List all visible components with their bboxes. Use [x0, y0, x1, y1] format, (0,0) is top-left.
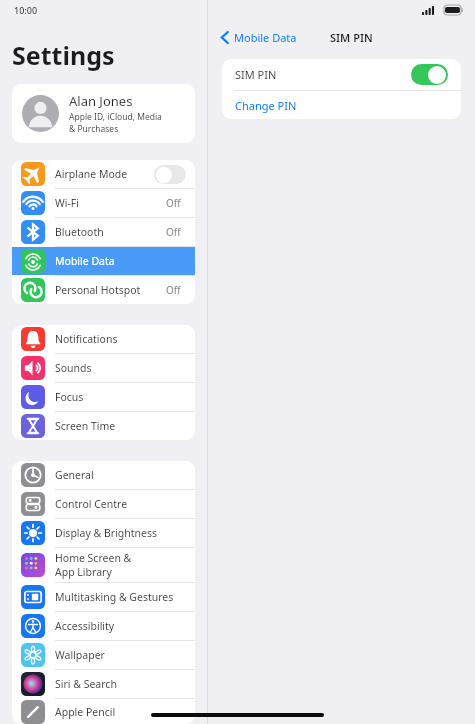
staticText: Personal Hotspot: [55, 283, 141, 297]
button[interactable]: Personal Hotspot: [12, 276, 195, 304]
button[interactable]: Back: [219, 25, 299, 50]
button[interactable]: Control Centre: [12, 490, 195, 518]
button[interactable]: General: [12, 461, 195, 489]
staticText: Settings: [12, 38, 115, 72]
staticText: General: [55, 468, 94, 482]
button[interactable]: SIM PIN: [222, 59, 461, 90]
button[interactable]: Siri & Search: [12, 670, 195, 698]
staticText: App Library: [55, 565, 112, 579]
staticText: & Purchases: [69, 123, 119, 135]
button[interactable]: Screen Time: [12, 412, 195, 440]
button[interactable]: Home Screen &: [12, 548, 195, 582]
staticText: Off: [166, 283, 181, 297]
button[interactable]: Wallpaper: [12, 641, 195, 669]
staticText: Focus: [55, 390, 84, 404]
staticText: Notifications: [55, 332, 118, 346]
staticText: Apple Pencil: [55, 705, 116, 719]
staticText: Bluetooth: [55, 225, 104, 239]
button[interactable]: Multitasking & Gestures: [12, 583, 195, 611]
button[interactable]: Accessibility: [12, 612, 195, 640]
staticText: Display & Brightness: [55, 526, 158, 540]
staticText: SIM PIN: [235, 67, 411, 82]
button[interactable]: Change PIN: [222, 91, 461, 119]
button[interactable]: Airplane Mode: [12, 160, 195, 188]
staticText: Screen Time: [55, 419, 116, 433]
button[interactable]: Wi-Fi: [12, 189, 195, 217]
button[interactable]: Notifications: [12, 325, 195, 353]
staticText: SIM PIN: [330, 30, 373, 45]
staticText: Alan Jones: [69, 92, 133, 110]
staticText: Mobile Data: [55, 254, 115, 268]
button[interactable]: Apple Pencil: [12, 699, 195, 724]
staticText: Wallpaper: [55, 648, 105, 662]
staticText: Mobile Data: [234, 30, 297, 45]
staticText: Off: [166, 196, 181, 210]
button[interactable]: Sounds: [12, 354, 195, 382]
staticText: Wi-Fi: [55, 196, 80, 210]
button[interactable]: Focus: [12, 383, 195, 411]
staticText: Sounds: [55, 361, 92, 375]
staticText: Multitasking & Gestures: [55, 590, 174, 604]
button[interactable]: Mobile Data: [12, 247, 195, 275]
staticText: Off: [166, 225, 181, 239]
button[interactable]: Display & Brightness: [12, 519, 195, 547]
staticText: 10:00: [14, 4, 38, 16]
staticText: Accessibility: [55, 619, 115, 633]
staticText: Control Centre: [55, 497, 128, 511]
button[interactable]: Alan Jones: [12, 84, 195, 143]
other: Back: [221, 31, 229, 44]
staticText: Change PIN: [235, 98, 297, 113]
staticText: Apple ID, iCloud, Media: [69, 111, 162, 123]
button[interactable]: Bluetooth: [12, 218, 195, 246]
staticText: Airplane Mode: [55, 167, 128, 181]
staticText: Siri & Search: [55, 677, 117, 691]
staticText: Home Screen &: [55, 551, 132, 565]
